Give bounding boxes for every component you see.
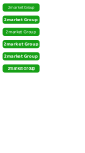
staticText: 2market Group (6, 30, 37, 34)
staticText: 2market Group (8, 66, 35, 71)
staticText: 2market Group (8, 5, 34, 10)
staticText: 2market Group (4, 54, 38, 59)
staticText: 2market Group (4, 42, 39, 46)
staticText: 2market Group (4, 17, 38, 22)
